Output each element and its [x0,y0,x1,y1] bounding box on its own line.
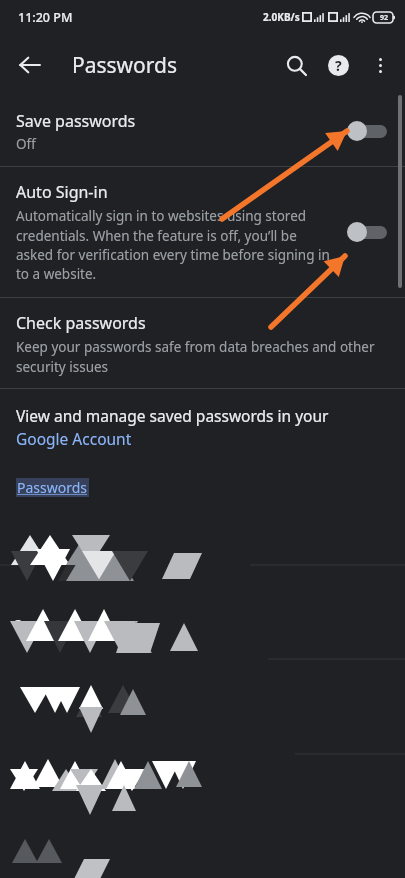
staticText: Automatically sign in to websites using … [16,207,335,283]
button[interactable]: Back [8,43,52,87]
staticText: ? [335,56,342,75]
staticText: Passwords [72,51,178,80]
staticText: 92 [380,13,389,23]
button[interactable]: Check passwords [0,298,405,388]
staticText: Off [16,135,36,153]
staticText: Auto Sign-in [16,181,108,203]
button[interactable]: More options [359,44,401,86]
button[interactable]: View and manage saved passwords in your [0,389,405,469]
button[interactable]: Help [317,44,359,86]
button[interactable]: Search [275,44,317,86]
staticText: View and manage saved passwords in your [16,405,329,426]
staticText: Check passwords [16,312,146,334]
button[interactable]: Save passwords [0,96,405,166]
staticText: Passwords [17,478,88,497]
button[interactable]: Passwords [16,478,89,497]
staticText: Save passwords [16,110,136,132]
staticText: Google Account [16,428,132,449]
button[interactable]: Auto Sign-in [0,167,405,297]
staticText: Keep your passwords safe from data breac… [16,338,389,376]
staticText: a [14,612,23,632]
staticText: 2.0KB/s [263,10,300,24]
staticText: 11:20 PM [18,9,73,26]
